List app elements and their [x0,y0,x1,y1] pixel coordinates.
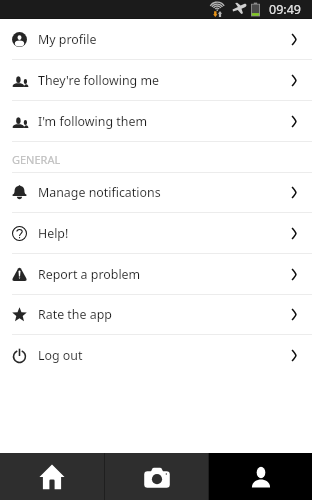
button[interactable]: My profile [0,19,312,59]
staticText: Report a problem [38,266,141,283]
button[interactable]: Report a problem [0,254,312,294]
button[interactable]: Camera [105,453,208,500]
button[interactable]: I'm following them [0,101,312,141]
button[interactable]: Rate the app [0,295,312,334]
staticText: My profile [38,31,97,48]
button[interactable]: Help! [0,213,312,253]
button[interactable]: They're following me [0,60,312,100]
staticText: Rate the app [38,306,112,323]
staticText: 09:49 [269,1,301,18]
button[interactable]: Log out [0,335,312,375]
staticText: I'm following them [38,113,147,130]
staticText: Manage notifications [38,184,161,201]
staticText: Log out [38,347,83,364]
button[interactable]: Home [0,453,104,500]
staticText: Help! [38,225,69,242]
staticText: GENERAL [12,152,61,167]
button[interactable]: Manage notifications [0,173,312,212]
button[interactable]: Profile [209,453,312,500]
staticText: They're following me [38,72,160,89]
